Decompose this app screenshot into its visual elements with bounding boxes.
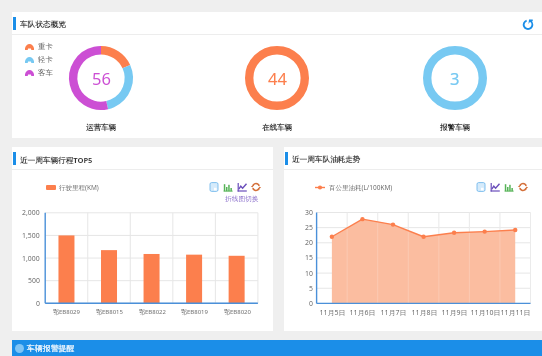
staticText: 1,000 xyxy=(22,254,40,263)
button[interactable]: 44 xyxy=(237,46,317,154)
staticText: 30 xyxy=(305,208,313,217)
staticText: 1,500 xyxy=(22,231,40,240)
staticText: 11月6日 xyxy=(349,308,376,318)
staticText: 0 xyxy=(309,299,313,308)
staticText: 行驶里程(KM) xyxy=(59,183,99,192)
button[interactable]: 56 xyxy=(61,46,141,154)
staticText: 车辆报警提醒 xyxy=(27,343,75,353)
staticText: 44 xyxy=(268,67,287,89)
staticText: 3 xyxy=(450,67,460,89)
button[interactable]: 百公里油耗(L/100KM) xyxy=(315,182,393,193)
button[interactable]: 数据视图 xyxy=(476,182,486,192)
staticText: 11月5日 xyxy=(319,308,346,318)
staticText: 鄂EB8015 xyxy=(96,308,123,316)
button[interactable]: 重卡 xyxy=(25,40,53,53)
staticText: 25 xyxy=(305,223,313,232)
staticText: 2,000 xyxy=(22,208,40,217)
staticText: 5 xyxy=(309,284,313,293)
button[interactable]: 刷新 xyxy=(518,182,528,192)
staticText: 11月10日 xyxy=(470,308,501,318)
button[interactable]: 车辆报警提醒 xyxy=(12,340,542,356)
staticText: 11月7日 xyxy=(380,308,407,318)
button[interactable]: 3 xyxy=(415,46,495,154)
button[interactable]: 折线图 xyxy=(237,182,247,192)
staticText: 20 xyxy=(305,238,313,247)
staticText: 折线图切换 xyxy=(225,195,259,203)
staticText: 15 xyxy=(305,253,313,262)
button[interactable]: 折线图 xyxy=(490,182,500,192)
staticText: 百公里油耗(L/100KM) xyxy=(329,183,393,192)
staticText: 0 xyxy=(36,299,40,308)
button[interactable]: 柱状图 xyxy=(223,182,233,192)
staticText: 车队状态概览 xyxy=(20,20,66,30)
staticText: 鄂EB8022 xyxy=(139,308,166,316)
staticText: 56 xyxy=(92,67,111,89)
staticText: 11月9日 xyxy=(441,308,468,318)
staticText: 11月11日 xyxy=(500,308,531,318)
button[interactable]: 数据视图 xyxy=(209,182,219,192)
staticText: 鄂EB8020 xyxy=(224,308,251,316)
button[interactable]: 刷新 xyxy=(251,182,261,192)
staticText: 报警车辆 xyxy=(440,123,470,132)
button[interactable]: 刷新 xyxy=(522,18,534,30)
staticText: 运营车辆 xyxy=(86,123,116,132)
staticText: 鄂EB8019 xyxy=(181,308,208,316)
staticText: 11月8日 xyxy=(411,308,438,318)
button[interactable]: 柱状图 xyxy=(504,182,514,192)
staticText: 重卡 xyxy=(38,42,53,51)
staticText: 在线车辆 xyxy=(262,123,292,132)
staticText: 近一周车辆行程TOP5 xyxy=(20,155,93,165)
staticText: 客车 xyxy=(38,68,53,77)
staticText: 10 xyxy=(305,269,313,278)
staticText: 鄂EB8029 xyxy=(53,308,80,316)
staticText: 轻卡 xyxy=(38,55,53,64)
button[interactable]: 行驶里程(KM) xyxy=(46,182,99,193)
button[interactable]: 客车 xyxy=(25,66,53,79)
staticText: 500 xyxy=(28,276,40,285)
staticText: 近一周车队油耗走势 xyxy=(292,155,361,165)
button[interactable]: 轻卡 xyxy=(25,53,53,66)
